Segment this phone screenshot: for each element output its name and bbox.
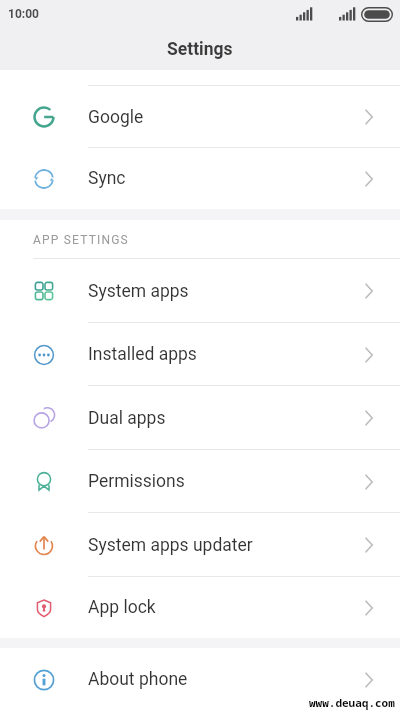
staticText: System apps (88, 281, 189, 302)
staticText: APP SETTINGS (33, 233, 129, 247)
button[interactable]: Installed apps (0, 323, 400, 386)
button[interactable]: System apps updater (0, 513, 400, 577)
staticText: Installed apps (88, 344, 197, 365)
staticText: Permissions (88, 471, 185, 492)
staticText: www.deuaq.com (309, 695, 395, 710)
staticText: Dual apps (88, 408, 166, 429)
button[interactable]: Permissions (0, 450, 400, 513)
staticText: App lock (88, 597, 156, 618)
button[interactable]: Dual apps (0, 386, 400, 450)
staticText: Settings (167, 39, 233, 60)
staticText: System apps updater (88, 535, 253, 556)
staticText: Google (88, 107, 144, 128)
button[interactable]: App lock (0, 577, 400, 638)
button[interactable]: About phone (0, 648, 400, 711)
staticText: 10:00 (8, 7, 39, 21)
button[interactable]: Google (0, 86, 400, 148)
button[interactable]: Sync (0, 148, 400, 209)
staticText: Sync (88, 168, 126, 189)
button[interactable]: System apps (0, 259, 400, 323)
staticText: About phone (88, 669, 188, 690)
